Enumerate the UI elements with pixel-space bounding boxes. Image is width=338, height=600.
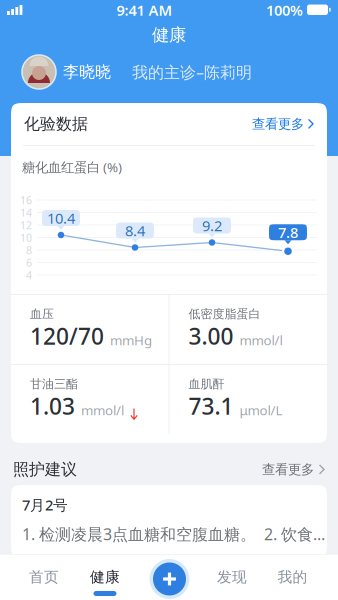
- button[interactable]: 添加: [147, 557, 191, 600]
- staticText: 7.8: [278, 222, 298, 242]
- staticText: 100%: [266, 0, 303, 20]
- staticText: mmHg: [110, 331, 152, 349]
- staticText: 我的主诊–陈莉明: [132, 61, 252, 83]
- staticText: 7月2号: [22, 495, 68, 514]
- staticText: 8: [26, 243, 32, 257]
- staticText: 120/70: [30, 321, 104, 351]
- staticText: μmol/L: [239, 401, 282, 419]
- staticText: 10: [20, 230, 32, 245]
- staticText: mmol/l: [239, 331, 282, 349]
- staticText: 血压: [30, 307, 54, 321]
- staticText: 4: [26, 268, 32, 282]
- staticText: 低密度脂蛋白: [188, 307, 260, 321]
- staticText: 14: [20, 205, 32, 220]
- staticText: 8.4: [125, 221, 145, 240]
- staticText: 健康: [152, 24, 186, 46]
- button[interactable]: 健康: [74, 554, 136, 600]
- staticText: 1. 检测凌晨3点血糖和空腹血糖。 2. 饮食上注意: [22, 523, 327, 545]
- staticText: 9:41 AM: [116, 0, 172, 20]
- staticText: 血肌酐: [188, 377, 224, 391]
- staticText: 10.4: [47, 208, 75, 228]
- staticText: 健康: [90, 568, 120, 586]
- button[interactable]: 化验数据: [11, 103, 327, 145]
- staticText: 查看更多: [262, 461, 314, 478]
- staticText: 化验数据: [24, 114, 88, 134]
- button[interactable]: 我的: [261, 554, 323, 600]
- staticText: 首页: [29, 568, 59, 586]
- staticText: 12: [20, 218, 32, 232]
- staticText: 糖化血红蛋白 (%): [22, 158, 122, 176]
- staticText: mmol/l: [81, 401, 124, 419]
- staticText: 我的: [277, 568, 307, 586]
- button[interactable]: 照护建议: [11, 454, 327, 485]
- staticText: 李晓晓: [63, 62, 111, 82]
- staticText: 查看更多: [252, 116, 304, 132]
- button[interactable]: 李晓晓: [0, 50, 338, 94]
- staticText: 9.2: [202, 216, 222, 235]
- staticText: 16: [20, 193, 32, 207]
- staticText: 发现: [217, 568, 247, 586]
- staticText: 甘油三酯: [30, 377, 78, 391]
- staticText: 6: [26, 255, 32, 270]
- button[interactable]: 发现: [201, 554, 263, 600]
- staticText: 照护建议: [13, 460, 77, 479]
- staticText: 73.1: [188, 391, 233, 421]
- staticText: 1.03: [30, 391, 75, 421]
- button[interactable]: 首页: [13, 554, 75, 600]
- staticText: 3.00: [188, 321, 233, 351]
